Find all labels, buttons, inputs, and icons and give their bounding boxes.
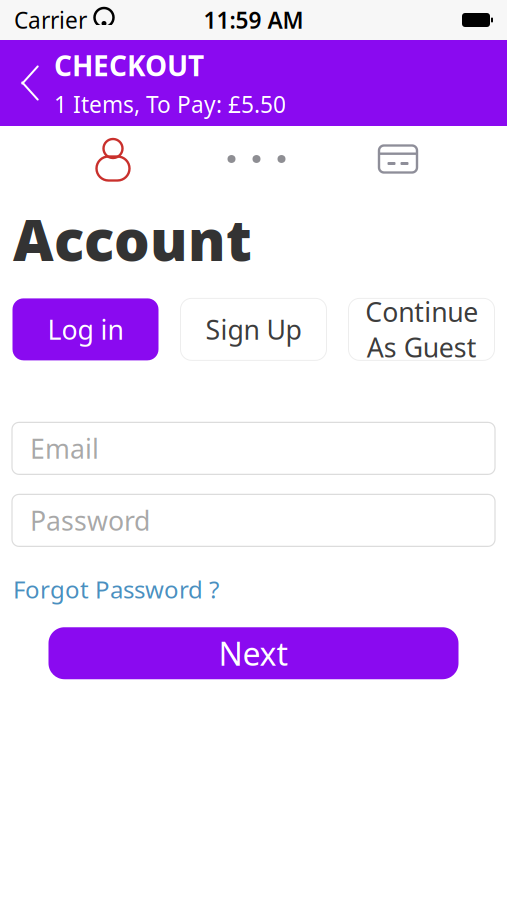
button[interactable]: Continue As Guest [348,298,494,360]
staticText: Account [13,202,252,276]
staticText: Forgot Password ? [13,573,219,605]
staticText: Next [218,632,288,674]
staticText: Log in [47,312,123,347]
staticText: 11:59 AM [203,5,303,35]
staticText: Sign Up [205,312,301,347]
staticText: Email [30,431,99,466]
button[interactable]: Email [12,422,495,474]
button[interactable]: Password [12,494,495,546]
staticText: Carrier [14,5,87,35]
staticText: Continue As Guest [365,294,478,365]
staticText: Password [30,503,150,538]
button[interactable]: Forgot Password ? [13,573,219,605]
button[interactable]: Back [8,53,52,113]
staticText: CHECKOUT [54,47,204,84]
button[interactable]: Sign Up [180,298,326,360]
button[interactable]: Log in [12,298,158,360]
button[interactable]: Next [48,627,458,679]
staticText: 1 Items, To Pay: £5.50 [54,89,286,119]
